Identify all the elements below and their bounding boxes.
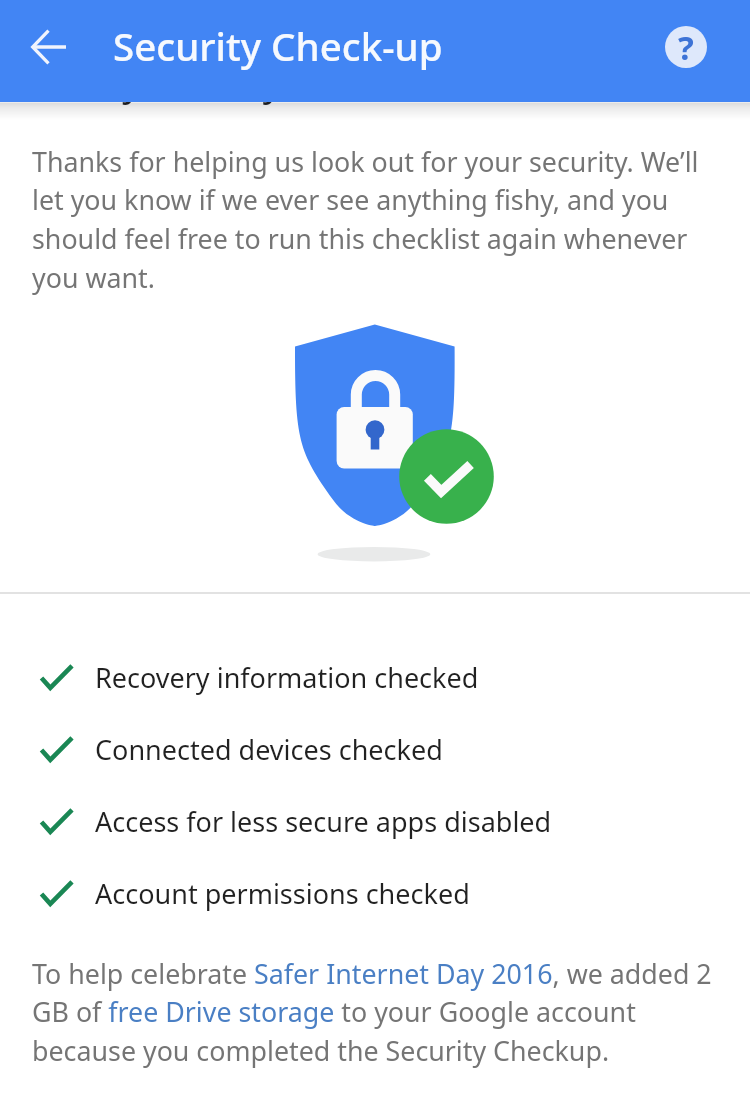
button[interactable]: Connected devices checked: [0, 713, 750, 785]
button[interactable]: Help: [658, 19, 714, 75]
button[interactable]: Back: [15, 13, 83, 81]
staticText: Thanks for helping us look out for your …: [32, 143, 714, 296]
staticText: Recovery information checked: [95, 659, 479, 696]
button[interactable]: Recovery information checked: [0, 641, 750, 713]
staticText: Account permissions checked: [95, 875, 470, 912]
staticText: ?: [678, 26, 694, 67]
button[interactable]: Account permissions checked: [0, 857, 750, 929]
button[interactable]: Access for less secure apps disabled: [0, 785, 750, 857]
staticText: Nicely done, you’re all set: [34, 55, 485, 107]
staticText: Access for less secure apps disabled: [95, 803, 552, 840]
staticText: Security Check-up: [113, 20, 443, 72]
staticText: To help celebrate Safer Internet Day 201…: [32, 955, 720, 1069]
staticText: Connected devices checked: [95, 731, 443, 768]
